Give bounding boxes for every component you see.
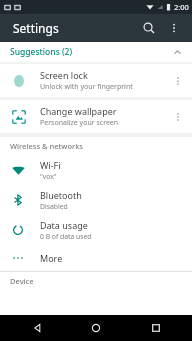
button[interactable]: Wi-Fi — [0, 155, 192, 185]
button[interactable]: Recent apps — [133, 315, 179, 341]
button[interactable]: Suggestion options — [168, 71, 188, 91]
staticText: "vox" — [40, 172, 57, 181]
staticText: Unlock with your fingerprint — [40, 82, 133, 92]
staticText: Wireless & networks — [10, 141, 83, 151]
button[interactable]: More options — [162, 16, 186, 40]
button[interactable]: Screen lock — [0, 64, 192, 97]
staticText: Device — [10, 276, 34, 286]
button[interactable]: Home — [73, 315, 119, 341]
button[interactable]: More — [0, 245, 192, 271]
staticText: Disabled — [40, 202, 68, 211]
button[interactable]: Suggestion options — [168, 107, 188, 127]
staticText: 2:00 — [174, 2, 189, 12]
staticText: More — [40, 252, 63, 264]
staticText: Bluetooth — [40, 189, 82, 201]
staticText: Suggestions (2) — [10, 46, 73, 58]
button[interactable]: Change wallpaper — [0, 100, 192, 133]
button[interactable]: Search — [136, 15, 162, 41]
button[interactable]: Back — [14, 315, 60, 341]
staticText: Settings — [13, 20, 59, 36]
staticText: Personalize your screen — [40, 118, 119, 128]
staticText: Data usage — [40, 219, 88, 231]
staticText: Change wallpaper — [40, 105, 117, 117]
staticText: Screen lock — [40, 69, 88, 81]
staticText: 0 B of data used — [40, 232, 92, 241]
staticText: Wi-Fi — [40, 159, 61, 171]
button[interactable]: Suggestions (2) — [0, 42, 192, 62]
button[interactable]: Bluetooth — [0, 185, 192, 215]
button[interactable]: Data usage — [0, 215, 192, 245]
